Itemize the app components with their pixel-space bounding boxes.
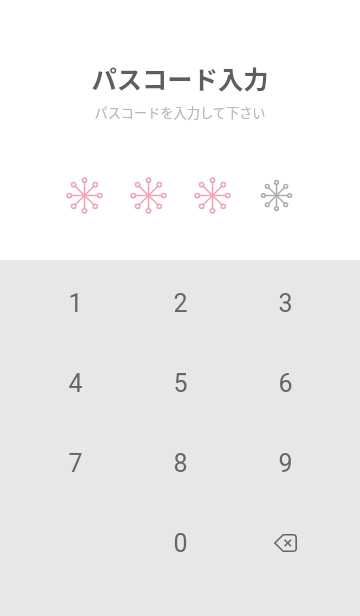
button[interactable]: 9 [240, 423, 360, 503]
staticText: 9 [278, 449, 293, 478]
button[interactable]: 5 [120, 343, 240, 423]
staticText: 6 [278, 369, 293, 398]
staticText: パスコード入力 [91, 60, 269, 97]
button[interactable]: 0 [120, 503, 240, 583]
staticText: 0 [173, 529, 188, 558]
staticText: 4 [68, 369, 83, 398]
staticText: 5 [173, 369, 188, 398]
button[interactable]: 6 [240, 343, 360, 423]
staticText: 8 [173, 449, 188, 478]
button[interactable]: 2 [120, 263, 240, 343]
staticText: 1 [68, 289, 83, 318]
button[interactable]: 1 [0, 263, 120, 343]
button[interactable]: 4 [0, 343, 120, 423]
button[interactable]: 7 [0, 423, 120, 503]
staticText: 7 [68, 449, 83, 478]
button[interactable]: 3 [240, 263, 360, 343]
button[interactable]: Backspace [240, 503, 360, 583]
staticText: パスコードを入力して下さい [94, 103, 266, 122]
staticText: 2 [173, 289, 188, 318]
button[interactable]: 8 [120, 423, 240, 503]
staticText: 3 [278, 289, 293, 318]
